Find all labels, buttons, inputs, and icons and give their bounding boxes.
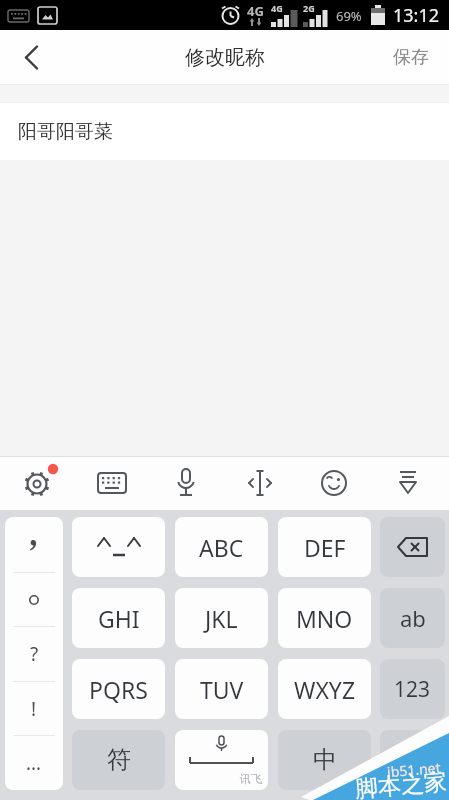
button[interactable]: PQRS: [72, 659, 165, 719]
button[interactable]: [72, 517, 165, 577]
button[interactable]: TUV: [175, 659, 268, 719]
staticText: 4G: [271, 2, 283, 14]
button[interactable]: [310, 459, 358, 507]
button[interactable]: 保存: [373, 30, 449, 84]
button[interactable]: [88, 459, 136, 507]
staticText: 中: [313, 745, 337, 775]
button[interactable]: 阳哥阳哥菜: [0, 103, 449, 160]
staticText: ABC: [199, 532, 244, 563]
staticText: 13:12: [393, 3, 440, 28]
staticText: JKL: [205, 603, 238, 634]
staticText: …: [26, 750, 42, 776]
button[interactable]: [0, 30, 56, 84]
button[interactable]: [14, 459, 62, 507]
staticText: 4G: [247, 2, 264, 20]
staticText: 讯飞: [240, 772, 262, 786]
staticText: 符: [107, 745, 131, 775]
button[interactable]: ABC: [175, 517, 268, 577]
staticText: 脚本之家: [354, 767, 448, 800]
button[interactable]: 123: [380, 659, 445, 719]
button[interactable]: [380, 517, 445, 577]
button[interactable]: ?: [5, 626, 63, 681]
staticText: !: [31, 696, 37, 722]
staticText: ?: [30, 641, 39, 667]
button[interactable]: [162, 459, 210, 507]
staticText: 123: [394, 675, 431, 704]
button[interactable]: 讯飞: [175, 730, 268, 790]
staticText: 保存: [393, 46, 429, 69]
staticText: GHI: [98, 603, 140, 634]
staticText: MNO: [296, 603, 353, 634]
staticText: 2G: [303, 2, 315, 14]
button[interactable]: JKL: [175, 588, 268, 648]
button[interactable]: !: [5, 681, 63, 736]
button[interactable]: WXYZ: [278, 659, 371, 719]
staticText: TUV: [200, 674, 244, 705]
staticText: DEF: [304, 532, 346, 563]
button[interactable]: 符: [72, 730, 165, 790]
staticText: jb51.net: [386, 758, 442, 781]
button[interactable]: ab: [380, 588, 445, 648]
button[interactable]: [5, 572, 63, 627]
staticText: PQRS: [89, 674, 148, 705]
button[interactable]: …: [5, 735, 63, 790]
button[interactable]: DEF: [278, 517, 371, 577]
button[interactable]: [384, 459, 432, 507]
button[interactable]: [236, 459, 284, 507]
staticText: 69%: [336, 7, 362, 25]
staticText: WXYZ: [294, 674, 356, 705]
staticText: 阳哥阳哥菜: [18, 120, 113, 144]
staticText: 修改昵称: [185, 45, 265, 70]
button[interactable]: MNO: [278, 588, 371, 648]
button[interactable]: GHI: [72, 588, 165, 648]
button[interactable]: 中: [278, 730, 371, 790]
button[interactable]: [5, 517, 63, 572]
button[interactable]: [380, 730, 445, 790]
staticText: ab: [400, 603, 426, 633]
